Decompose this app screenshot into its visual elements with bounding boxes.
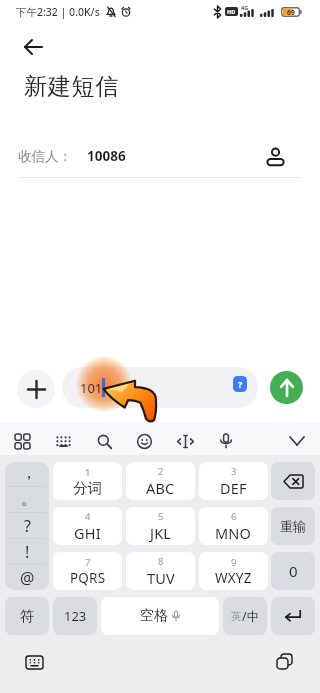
button[interactable]: ! [5,539,49,564]
staticText: 10086 [87,147,126,165]
staticText: 5 [158,510,164,523]
button[interactable] [131,428,157,454]
staticText: /中 [242,608,260,625]
staticText: HD [227,8,236,15]
staticText: 空格 [140,607,168,625]
staticText: WXYZ [215,569,252,587]
button[interactable]: ? [62,367,258,408]
staticText: PQRS [70,569,106,587]
staticText: 英 [231,610,242,623]
button[interactable]: 重输 [271,507,315,545]
staticText: 4 [85,510,91,523]
staticText: ? [24,515,31,537]
button[interactable]: 2 [126,462,195,500]
button[interactable]: 123 [53,597,97,635]
button[interactable] [270,371,303,404]
button[interactable]: 1 [53,462,122,500]
staticText: 123 [64,607,87,625]
staticText: JKL [150,523,172,543]
button[interactable] [284,428,310,454]
button[interactable]: ? [5,513,49,538]
staticText: 下午2:32 | 0.0K/s [16,5,100,19]
staticText: 7 [85,556,91,569]
button[interactable] [213,428,239,454]
staticText: 0 [289,561,298,581]
button[interactable] [272,650,296,672]
staticText: ABC [146,478,175,498]
staticText: DEF [220,478,247,498]
staticText: MNO [215,523,252,543]
staticText: 9 [231,556,237,569]
staticText: GHI [74,523,101,543]
button[interactable] [17,370,55,408]
staticText: 1 [85,466,91,479]
staticText: 分词 [73,479,103,497]
staticText: TUV [147,568,175,588]
button[interactable] [271,597,315,635]
button[interactable]: 8 [126,552,195,590]
button[interactable]: 符 [5,597,49,635]
staticText: 2 [158,465,164,478]
staticText: 8 [158,555,164,568]
button[interactable] [18,32,48,62]
button[interactable]: 空格 [101,597,219,635]
staticText: @ [20,567,35,589]
button[interactable]: ， [5,462,49,486]
button[interactable]: 4 [53,507,122,545]
button[interactable]: @ [5,565,49,590]
staticText: 。 [21,489,37,509]
button[interactable]: 6 [199,507,268,545]
staticText: 新建短信 [24,72,120,101]
button[interactable] [262,143,288,169]
staticText: 4G [241,4,249,11]
staticText: ， [21,463,37,483]
button[interactable] [22,652,46,672]
staticText: 69 [287,8,296,18]
button[interactable]: 5 [126,507,195,545]
button[interactable]: 0 [271,552,315,590]
staticText: 收信人： [18,148,72,165]
button[interactable]: 7 [53,552,122,590]
staticText: 3 [231,465,237,478]
button[interactable] [50,428,76,454]
button[interactable]: 9 [199,552,268,590]
button[interactable] [9,428,35,454]
staticText: 6 [231,510,237,523]
staticText: 符 [20,607,35,625]
button[interactable] [172,428,198,454]
button[interactable]: 3 [199,462,268,500]
staticText: 101 [80,379,103,397]
button[interactable] [271,462,315,500]
staticText: ? [238,378,243,390]
button[interactable]: 。 [5,487,49,512]
staticText: ! [25,541,30,563]
button[interactable]: 英 [223,597,267,635]
staticText: 重输 [280,518,306,534]
button[interactable] [91,428,117,454]
